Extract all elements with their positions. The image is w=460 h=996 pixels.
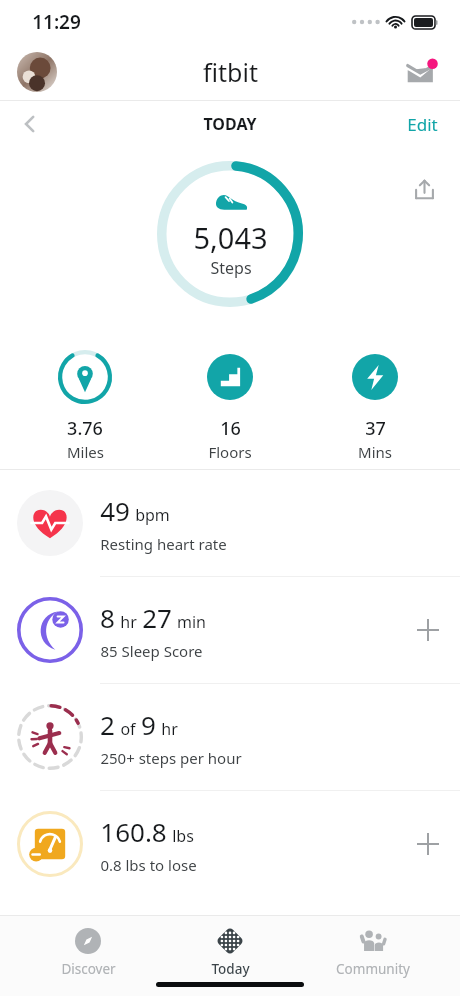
staticText: 27 bbox=[142, 600, 172, 635]
button[interactable]: Messages bbox=[404, 53, 442, 91]
staticText: Floors bbox=[208, 442, 252, 462]
staticText: 11:29 bbox=[32, 9, 81, 35]
button[interactable]: Back bbox=[10, 104, 50, 144]
button[interactable]: 160.8 bbox=[0, 791, 460, 897]
button[interactable]: 49 bbox=[0, 470, 460, 576]
button[interactable]: Add bbox=[406, 822, 450, 866]
staticText: 5,043 bbox=[193, 218, 268, 257]
button[interactable]: 16 bbox=[170, 347, 290, 464]
staticText: 3.76 bbox=[67, 416, 103, 441]
staticText: Miles bbox=[67, 442, 104, 462]
staticText: Community bbox=[336, 960, 410, 978]
staticText: min bbox=[177, 611, 206, 633]
staticText: hr bbox=[161, 718, 178, 740]
staticText: 49 bbox=[100, 493, 130, 528]
button[interactable]: 2 bbox=[0, 684, 460, 790]
staticText: 8 bbox=[100, 600, 115, 635]
staticText: fitbit bbox=[203, 55, 258, 89]
button[interactable]: Add bbox=[406, 608, 450, 652]
staticText: 85 Sleep Score bbox=[100, 641, 203, 661]
button[interactable]: 3.76 bbox=[25, 347, 145, 464]
button[interactable]: 5,043 bbox=[157, 161, 303, 307]
staticText: Discover bbox=[61, 960, 116, 978]
staticText: hr bbox=[120, 611, 137, 633]
button[interactable]: 37 bbox=[315, 347, 435, 464]
staticText: 16 bbox=[220, 416, 241, 441]
staticText: bpm bbox=[135, 504, 170, 526]
staticText: 250+ steps per hour bbox=[100, 748, 242, 768]
staticText: Today bbox=[211, 960, 250, 978]
staticText: 2 bbox=[100, 707, 115, 742]
staticText: 0.8 lbs to lose bbox=[100, 855, 197, 875]
staticText: Edit bbox=[407, 113, 438, 136]
button[interactable]: Today bbox=[175, 924, 285, 980]
staticText: lbs bbox=[172, 825, 194, 847]
staticText: of bbox=[120, 718, 136, 740]
staticText: 9 bbox=[141, 707, 156, 742]
button[interactable]: Edit bbox=[401, 107, 444, 142]
button[interactable]: 8 bbox=[0, 577, 460, 683]
button[interactable]: Share bbox=[404, 169, 444, 209]
staticText: 160.8 bbox=[100, 814, 167, 849]
staticText: Resting heart rate bbox=[100, 534, 227, 554]
button[interactable]: Discover bbox=[33, 924, 143, 980]
button[interactable]: Profile bbox=[17, 52, 57, 92]
staticText: TODAY bbox=[203, 113, 257, 135]
staticText: Mins bbox=[358, 442, 392, 462]
staticText: Steps bbox=[210, 257, 252, 279]
button[interactable]: Community bbox=[318, 924, 428, 980]
staticText: 37 bbox=[365, 416, 386, 441]
